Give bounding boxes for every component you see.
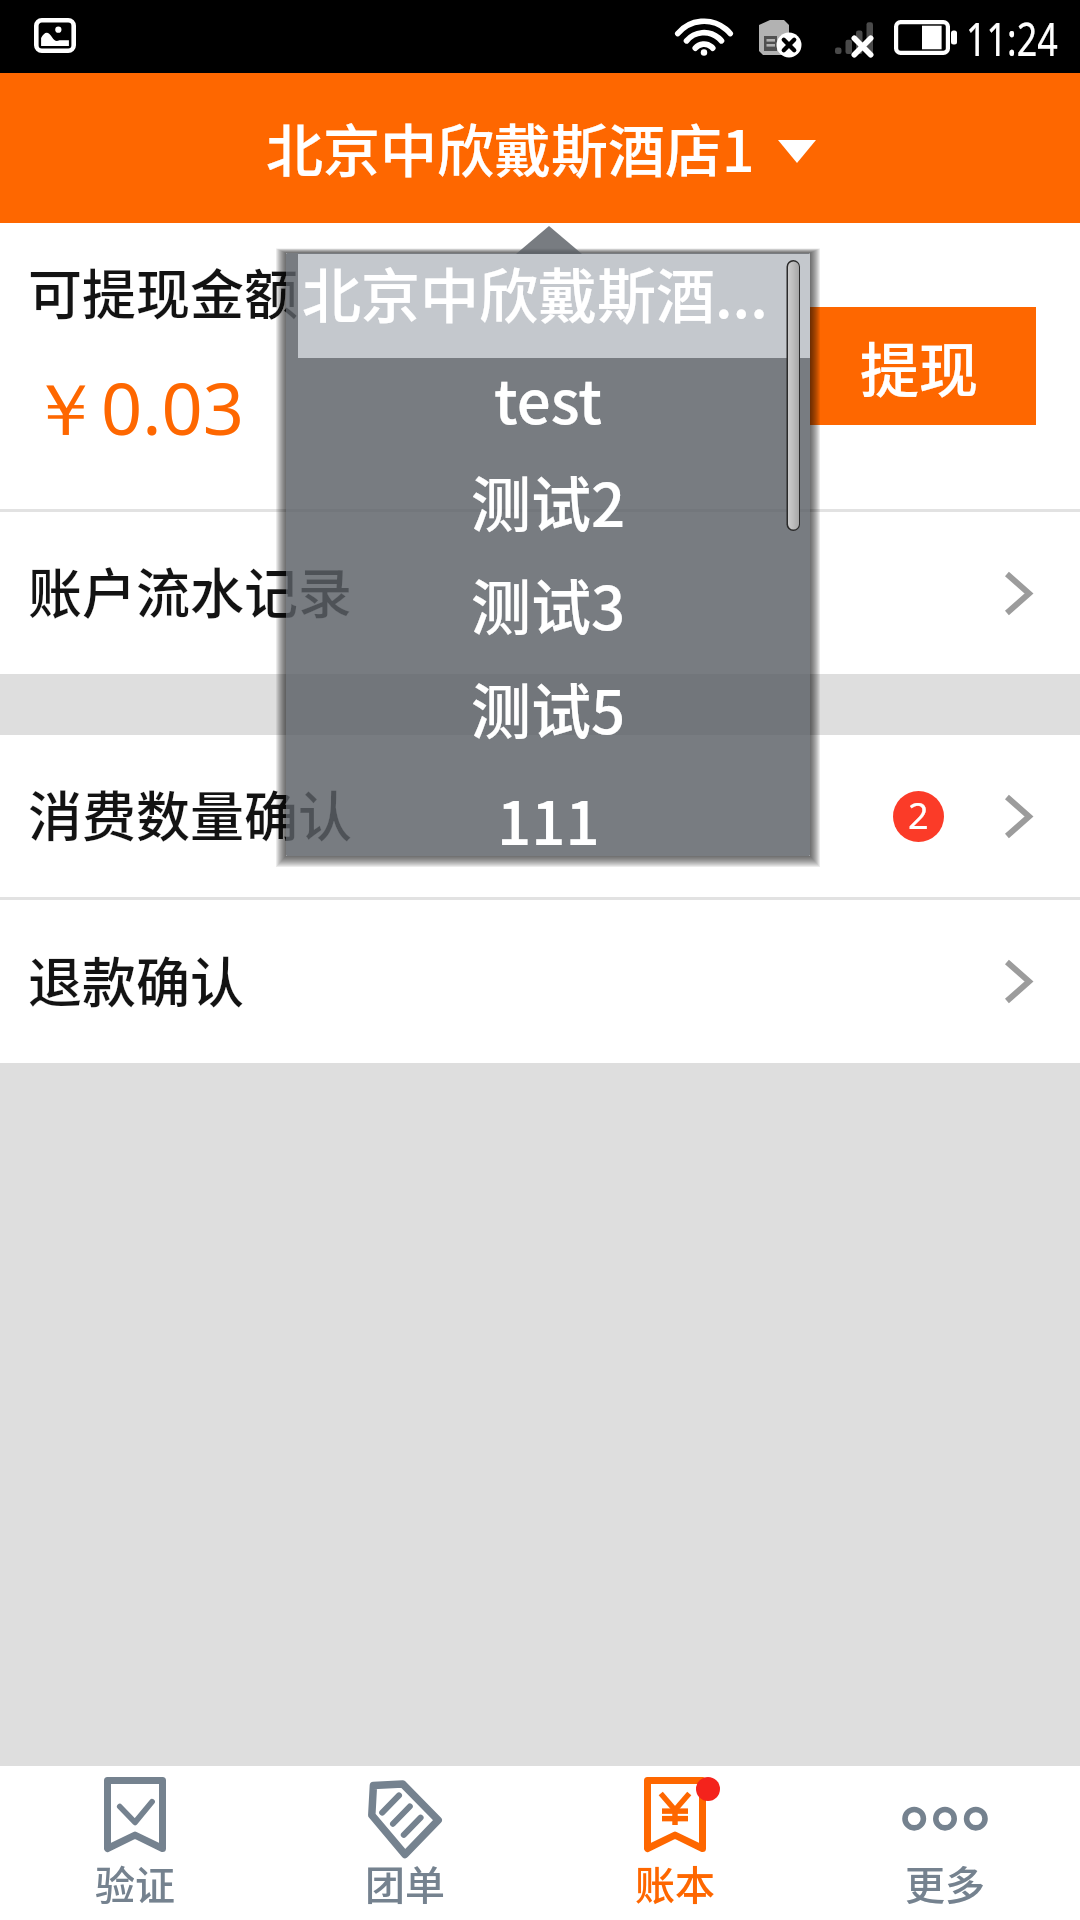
button[interactable]: 账户流水记录 [0,512,1080,674]
staticText: 账户流水记录 [28,551,352,629]
button[interactable]: 测试2 [286,462,810,566]
button[interactable]: test [286,358,810,462]
staticText: 提现 [860,324,979,409]
other: Screenshot notification [34,18,76,53]
button[interactable]: 测试3 [286,565,810,669]
staticText: 退款确认 [28,940,244,1018]
staticText: 消费数量确认 [28,774,352,852]
button[interactable]: 提现 [810,307,1036,425]
staticText: 111 [497,775,600,856]
button[interactable]: 北京中欣戴斯酒... [298,254,810,358]
staticText: 测试3 [471,560,626,647]
button[interactable]: 退款确认 [0,900,1080,1063]
button[interactable]: 更多 [810,1766,1080,1920]
button[interactable]: 团单 [270,1766,540,1920]
button[interactable]: 消费数量确认 [0,735,1080,897]
staticText: test [494,354,602,441]
staticText: 可提现金额 [28,252,298,330]
staticText: 北京中欣戴斯酒... [302,253,768,335]
button[interactable]: 北京中欣戴斯酒店1 [0,73,1080,223]
staticText: 11:24 [966,7,1058,70]
staticText: 北京中欣戴斯酒店1 [266,106,755,189]
staticText: ￥0.03 [29,358,244,456]
button[interactable]: 测试5 [286,669,810,773]
button[interactable]: 验证 [0,1766,270,1920]
button[interactable]: 111 [286,774,810,856]
staticText: 测试5 [471,664,626,751]
staticText: 账本 [635,1854,715,1912]
staticText: 更多 [905,1854,985,1912]
staticText: 验证 [95,1854,175,1912]
staticText: 2 [908,791,929,840]
staticText: 测试2 [471,457,626,544]
button[interactable]: 账本 [540,1766,810,1920]
staticText: 团单 [365,1854,445,1912]
